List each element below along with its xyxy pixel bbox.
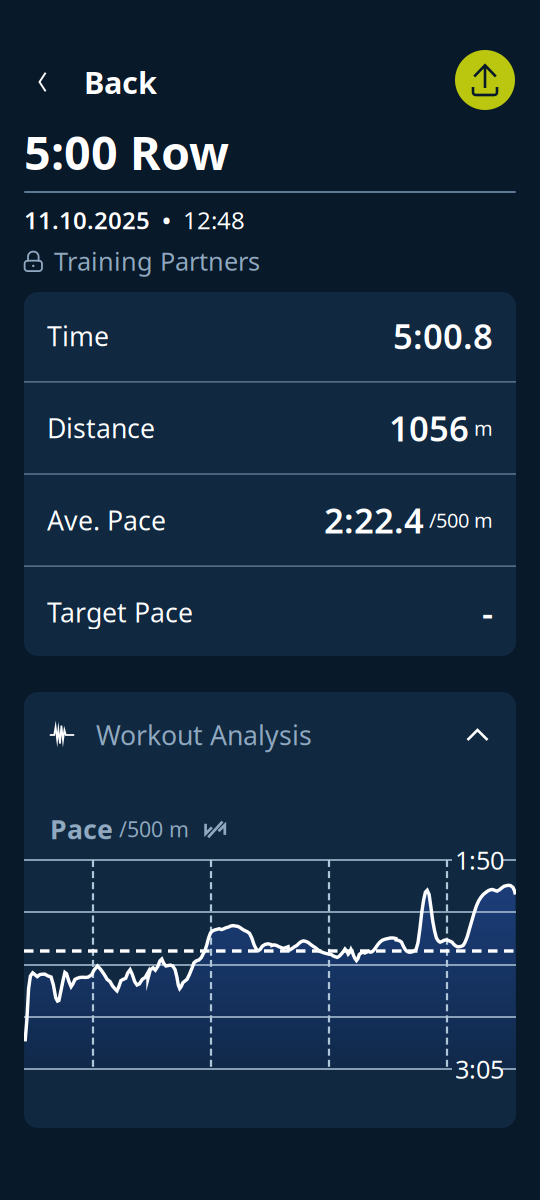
staticText: - [482,589,493,635]
button[interactable]: Workout Analysis [24,692,516,778]
staticText: 5:00 Row [24,121,229,183]
staticText: 1056 [389,405,469,451]
button[interactable]: Training Partners [24,246,516,276]
staticText: 2:22.4 [324,497,424,543]
staticText: Distance [47,410,155,446]
button[interactable]: Target Pace [24,567,516,658]
staticText: Target Pace [47,594,193,630]
staticText: 1:50 [455,843,504,877]
staticText: Time [47,318,109,353]
staticText: Back [84,62,157,102]
staticText: Pace [50,811,113,847]
staticText: Ave. Pace [47,502,166,538]
staticText: • [150,204,183,236]
staticText: 11.10.2025 [24,204,150,236]
staticText: 12:48 [183,204,245,236]
staticText: /500 m [424,507,493,533]
button[interactable]: Time [24,290,516,381]
staticText: Training Partners [54,244,260,278]
staticText: 3:05 [455,1052,504,1086]
button[interactable]: Ave. Pace [24,475,516,566]
staticText: m [469,415,493,441]
button[interactable]: Back [0,54,210,110]
staticText: 5:00.8 [393,313,493,359]
staticText: Workout Analysis [75,717,312,753]
button[interactable]: Share [455,50,515,110]
button[interactable]: Distance [24,382,516,473]
staticText: /500 m [113,815,189,843]
